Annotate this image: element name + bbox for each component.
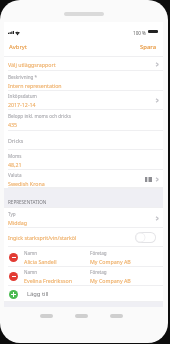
staticText: Dricks — [8, 137, 24, 144]
staticText: Intern representation — [8, 82, 62, 89]
other: Ta bort — [9, 253, 18, 262]
staticText: 2017-12-14 — [8, 101, 36, 108]
staticText: Välj utläggsrapport — [8, 61, 56, 68]
staticText: Belopp inkl. moms och dricks — [8, 113, 72, 119]
button[interactable]: Beskrivning * — [4, 71, 163, 91]
staticText: My Company AB — [90, 277, 131, 284]
button[interactable]: Valuta — [4, 170, 163, 188]
staticText: 100 % — [133, 30, 146, 36]
staticText: Avbryt — [9, 43, 27, 51]
button[interactable]: Lägg till — [4, 286, 163, 302]
staticText: 435 — [8, 121, 18, 128]
staticText: Evelina Fredriksson — [24, 277, 72, 284]
button[interactable]: Inköpsdatum — [4, 91, 163, 110]
staticText: Ingick starksprit/vin/starköl — [8, 234, 77, 241]
button[interactable]: Typ — [4, 208, 163, 228]
button[interactable]: Välj utläggsrapport — [4, 57, 163, 71]
staticText: Swedish Krona — [8, 180, 45, 187]
staticText: My Company AB — [90, 258, 131, 265]
staticText: Beskrivning * — [8, 74, 38, 80]
button[interactable]: Spara — [134, 39, 163, 55]
button[interactable]: Moms — [4, 150, 163, 170]
staticText: Lägg till — [27, 290, 49, 298]
staticText: Inköpsdatum — [8, 93, 37, 99]
staticText: Företag — [90, 250, 107, 256]
button[interactable]: Ta bort — [4, 267, 163, 286]
button[interactable]: Avbryt — [4, 39, 33, 55]
staticText: Middag — [8, 219, 27, 226]
staticText: Företag — [90, 269, 107, 275]
staticText: Namn — [24, 250, 38, 256]
staticText: Alicia Sandell — [24, 258, 57, 265]
button[interactable]: Ingick starksprit/vin/starköl — [4, 228, 163, 247]
staticText: Moms — [8, 153, 22, 159]
staticText: Namn — [24, 269, 38, 275]
staticText: Typ — [8, 211, 16, 217]
button[interactable]: Ta bort — [4, 247, 163, 267]
button[interactable]: Belopp inkl. moms och dricks — [4, 110, 163, 131]
other: Ta bort — [9, 272, 18, 281]
staticText: REPRESENTATION — [8, 199, 47, 205]
button[interactable]: Dricks — [4, 131, 163, 150]
staticText: 48,21 — [8, 161, 22, 168]
staticText: Valuta — [8, 172, 22, 178]
staticText: Spara — [140, 43, 157, 51]
